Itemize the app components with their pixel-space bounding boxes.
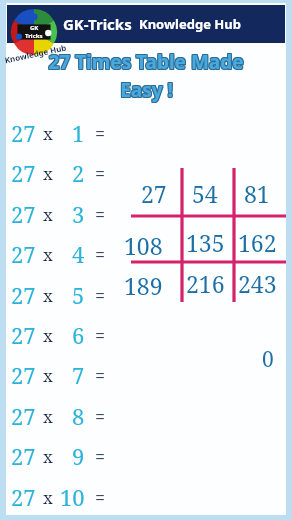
button[interactable]: 27: [11, 239, 106, 269]
button[interactable]: 27: [11, 482, 106, 512]
staticText: =: [95, 485, 106, 510]
staticText: 27 Times Table Made: [48, 48, 244, 74]
staticText: 10: [60, 482, 85, 512]
staticText: =: [95, 404, 106, 429]
button[interactable]: 27: [11, 118, 106, 148]
staticText: x: [43, 162, 53, 185]
staticText: 27 Times Table Made: [49, 50, 245, 76]
staticText: 27 Times Table Made: [49, 49, 245, 75]
staticText: 6: [72, 320, 85, 350]
staticText: x: [43, 122, 53, 145]
staticText: Easy !: [120, 77, 173, 103]
button[interactable]: 27: [11, 280, 106, 310]
staticText: Easy !: [119, 76, 172, 102]
staticText: x: [43, 364, 53, 387]
staticText: 81: [244, 178, 270, 209]
staticText: Easy !: [121, 76, 174, 102]
button[interactable]: 27: [11, 199, 106, 229]
staticText: 0: [262, 345, 274, 374]
staticText: =: [95, 161, 106, 186]
staticText: 27 Times Table Made: [48, 49, 244, 75]
staticText: x: [43, 284, 53, 307]
staticText: 135: [186, 227, 225, 258]
staticText: 27: [11, 280, 36, 310]
staticText: =: [95, 363, 106, 388]
button[interactable]: 27: [11, 401, 106, 431]
staticText: 27 Times Table Made: [47, 49, 243, 75]
staticText: 9: [72, 441, 85, 471]
staticText: 1: [72, 118, 85, 148]
staticText: x: [43, 445, 53, 468]
staticText: 27: [11, 360, 36, 390]
staticText: =: [95, 202, 106, 227]
staticText: GK-Tricks: [63, 14, 132, 34]
staticText: GK: [30, 24, 39, 32]
staticText: Easy !: [121, 77, 174, 103]
button[interactable]: 27: [11, 158, 106, 188]
staticText: Tricks: [25, 32, 43, 40]
staticText: =: [95, 444, 106, 469]
staticText: Easy !: [119, 77, 172, 103]
staticText: 27: [11, 441, 36, 471]
staticText: 5: [72, 280, 85, 310]
button[interactable]: 27: [11, 320, 106, 350]
staticText: 27: [11, 320, 36, 350]
staticText: =: [95, 242, 106, 267]
button[interactable]: 27: [11, 360, 106, 390]
staticText: Knowledge Hub: [3, 42, 67, 65]
staticText: Easy !: [120, 78, 173, 104]
staticText: 8: [72, 401, 85, 431]
staticText: =: [95, 323, 106, 348]
button[interactable]: GK Tricks Knowledge Hub logo: [10, 8, 58, 56]
staticText: 2: [72, 158, 85, 188]
staticText: =: [95, 121, 106, 146]
staticText: 27: [11, 482, 36, 512]
staticText: 27: [141, 178, 167, 209]
button[interactable]: GK-Tricks: [7, 5, 285, 43]
staticText: 27: [11, 118, 36, 148]
staticText: 189: [124, 270, 163, 301]
staticText: x: [43, 486, 53, 509]
staticText: 27 Times Table Made: [48, 50, 244, 76]
staticText: 27: [11, 199, 36, 229]
staticText: Easy !: [119, 78, 172, 104]
staticText: 7: [72, 360, 85, 390]
staticText: 162: [238, 227, 277, 258]
staticText: 3: [72, 199, 85, 229]
staticText: x: [43, 203, 53, 226]
staticText: 54: [192, 178, 218, 209]
staticText: 27 Times Table Made: [47, 50, 243, 76]
staticText: 27 Times Table Made: [47, 48, 243, 74]
staticText: =: [95, 283, 106, 308]
staticText: 108: [124, 230, 163, 261]
staticText: 27 Times Table Made: [49, 48, 245, 74]
staticText: Easy !: [120, 76, 173, 102]
staticText: 216: [186, 268, 225, 299]
staticText: 4: [72, 239, 85, 269]
staticText: 27: [11, 158, 36, 188]
button[interactable]: 27: [11, 441, 106, 471]
staticText: 27: [11, 401, 36, 431]
staticText: x: [43, 324, 53, 347]
staticText: x: [43, 243, 53, 266]
staticText: x: [43, 405, 53, 428]
staticText: Easy !: [121, 78, 174, 104]
staticText: Knowledge Hub: [139, 15, 241, 33]
staticText: 27: [11, 239, 36, 269]
staticText: 243: [238, 268, 277, 299]
